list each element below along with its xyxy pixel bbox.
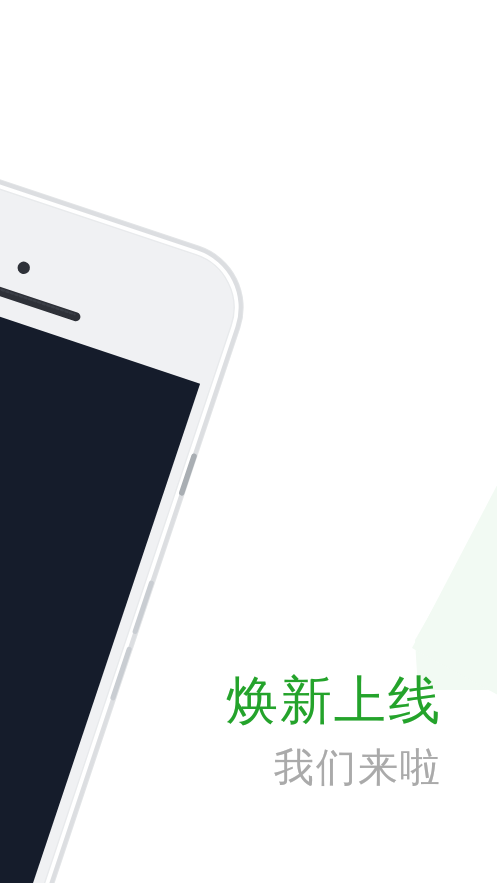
staticText: 我们来啦: [273, 742, 441, 792]
button[interactable]: 焕新上线: [0, 668, 497, 792]
staticText: 焕新上线: [225, 668, 441, 734]
